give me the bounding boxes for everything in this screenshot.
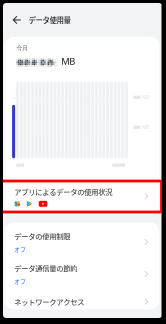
staticText: ネットワークアクセス — [14, 296, 84, 307]
button[interactable]: データ通信量の節約 — [4, 258, 159, 290]
staticText: 今月 — [16, 43, 28, 52]
button[interactable]: ネットワークアクセス — [4, 290, 159, 313]
staticText: アプリによるデータの使用状況 — [14, 186, 112, 197]
staticText: MB — [142, 124, 149, 130]
staticText: データの使用制限 — [14, 231, 70, 241]
staticText: データ使用量 — [29, 15, 71, 25]
button[interactable]: データの使用制限 — [4, 226, 159, 258]
staticText: MB — [142, 94, 149, 100]
staticText: MB — [61, 56, 75, 67]
button[interactable]: 戻る — [2, 3, 161, 37]
staticText: データ通信量の節約 — [14, 263, 77, 273]
staticText: オフ — [14, 245, 26, 253]
staticText: オフ — [14, 277, 26, 285]
button[interactable]: アプリによるデータの使用状況 — [4, 178, 159, 215]
